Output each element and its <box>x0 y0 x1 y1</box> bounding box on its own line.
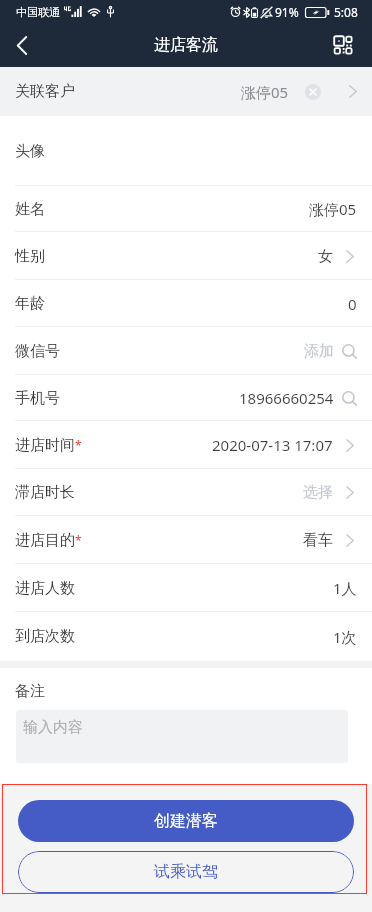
staticText: 1人 <box>333 578 357 598</box>
button[interactable]: Back <box>0 23 44 67</box>
staticText: 手机号 <box>15 389 60 408</box>
staticText: 微信号 <box>15 342 60 361</box>
staticText: 选择 <box>303 483 333 502</box>
button[interactable]: 输入内容 <box>16 710 348 763</box>
button[interactable]: 姓名 <box>0 186 372 232</box>
staticText: 女 <box>318 247 333 266</box>
button[interactable]: 关联客户 <box>0 67 372 116</box>
staticText: 2020-07-13 17:07 <box>212 435 333 455</box>
button[interactable]: 创建潜客 <box>18 800 354 842</box>
button[interactable]: 滞店时长 <box>0 469 372 516</box>
staticText: 性别 <box>15 247 45 266</box>
staticText: * <box>75 437 82 453</box>
button[interactable]: 进店时间 <box>0 421 372 469</box>
staticText: * <box>75 532 82 548</box>
staticText: 姓名 <box>15 200 45 219</box>
staticText: 看车 <box>303 531 333 550</box>
staticText: 1次 <box>333 627 357 647</box>
button[interactable]: 头像 <box>0 116 372 186</box>
staticText: 添加 <box>304 342 334 361</box>
staticText: 0 <box>348 294 357 314</box>
staticText: 18966660254 <box>239 388 334 408</box>
button[interactable]: Scan QR code <box>321 23 365 67</box>
button[interactable]: 试乘试驾 <box>18 851 354 893</box>
staticText: 涨停05 <box>309 199 357 219</box>
staticText: 头像 <box>15 142 45 161</box>
button[interactable]: 到店次数 <box>0 612 372 661</box>
button[interactable]: 进店目的 <box>0 516 372 564</box>
staticText: 涨停05 <box>241 82 289 102</box>
staticText: 试乘试驾 <box>154 862 218 882</box>
button[interactable]: 手机号 <box>0 375 372 421</box>
staticText: 备注 <box>15 682 45 701</box>
staticText: 进店人数 <box>15 579 75 598</box>
staticText: 输入内容 <box>23 718 83 737</box>
button[interactable]: 年龄 <box>0 280 372 327</box>
staticText: 创建潜客 <box>154 811 218 831</box>
button[interactable]: Clear <box>305 84 321 100</box>
staticText: 到店次数 <box>15 627 75 646</box>
staticText: 进店客流 <box>154 35 218 55</box>
staticText: 滞店时长 <box>15 483 75 502</box>
button[interactable]: 进店人数 <box>0 564 372 612</box>
button[interactable]: 性别 <box>0 232 372 280</box>
button[interactable]: 微信号 <box>0 327 372 375</box>
staticText: 91% <box>275 4 299 20</box>
staticText: 进店时间 <box>15 436 75 455</box>
staticText: 年龄 <box>15 294 45 313</box>
staticText: 关联客户 <box>15 82 75 101</box>
staticText: 5:08 <box>334 4 358 20</box>
staticText: 中国联通 <box>16 5 60 19</box>
staticText: 进店目的 <box>15 531 75 550</box>
